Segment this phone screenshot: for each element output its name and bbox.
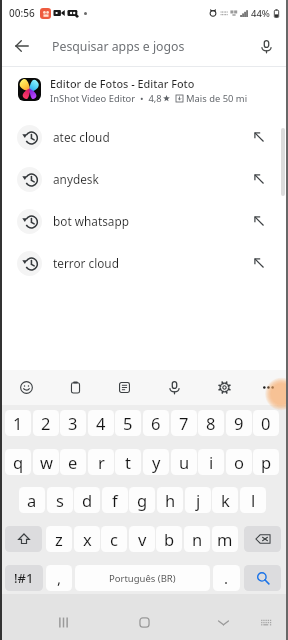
- button[interactable]: 1: [5, 410, 31, 436]
- button[interactable]: Stickers: [107, 370, 141, 405]
- staticText: k: [221, 489, 230, 511]
- staticText: y: [152, 451, 161, 473]
- staticText: f: [112, 489, 118, 511]
- button[interactable]: z: [46, 526, 72, 552]
- staticText: 00:56: [9, 6, 35, 20]
- button[interactable]: n: [184, 526, 210, 552]
- button[interactable]: p: [253, 449, 279, 475]
- button[interactable]: s: [47, 487, 73, 513]
- button[interactable]: Backspace: [244, 526, 281, 552]
- button[interactable]: 2: [33, 410, 59, 436]
- button[interactable]: Insert anydesk into search: [248, 168, 270, 190]
- staticText: z: [55, 528, 63, 550]
- button[interactable]: v: [129, 526, 155, 552]
- staticText: 44%: [251, 7, 270, 20]
- button[interactable]: Clipboard: [58, 370, 92, 405]
- button[interactable]: b: [156, 526, 182, 552]
- button[interactable]: atec cloud: [0, 116, 288, 158]
- button[interactable]: !#1: [5, 565, 43, 591]
- staticText: Português (BR): [109, 572, 176, 585]
- button[interactable]: ,: [46, 565, 72, 591]
- button[interactable]: terror cloud: [0, 242, 288, 284]
- button[interactable]: h: [157, 487, 183, 513]
- button[interactable]: 7: [171, 410, 197, 436]
- button[interactable]: More options: [251, 370, 285, 405]
- button[interactable]: 4: [88, 410, 114, 436]
- button[interactable]: y: [143, 449, 169, 475]
- staticText: p: [261, 451, 272, 473]
- button[interactable]: u: [171, 449, 197, 475]
- staticText: 4: [96, 412, 106, 434]
- button[interactable]: o: [226, 449, 252, 475]
- staticText: q: [13, 451, 24, 473]
- staticText: .: [224, 568, 229, 588]
- staticText: c: [110, 528, 118, 550]
- button[interactable]: 9: [226, 410, 252, 436]
- button[interactable]: Editor de Fotos - Editar Foto: [0, 67, 288, 116]
- button[interactable]: Back: [8, 32, 36, 60]
- button[interactable]: d: [74, 487, 100, 513]
- button[interactable]: f: [102, 487, 128, 513]
- button[interactable]: Home: [124, 605, 164, 639]
- button[interactable]: Insert atec cloud into search: [248, 126, 270, 148]
- button[interactable]: k: [212, 487, 238, 513]
- staticText: v: [138, 528, 147, 550]
- staticText: m: [217, 528, 233, 550]
- staticText: j: [196, 489, 201, 511]
- staticText: 8: [206, 412, 216, 434]
- staticText: 5: [123, 412, 133, 434]
- button[interactable]: Voice search: [252, 32, 280, 60]
- button[interactable]: Insert bot whatsapp into search: [248, 210, 270, 232]
- staticText: Mais de 50 mi: [186, 92, 248, 105]
- button[interactable]: x: [74, 526, 100, 552]
- button[interactable]: Recent apps: [43, 605, 83, 639]
- staticText: Editor de Fotos - Editar Foto: [50, 76, 195, 91]
- button[interactable]: Back: [203, 605, 243, 639]
- button[interactable]: w: [33, 449, 59, 475]
- button[interactable]: Shift: [5, 526, 42, 552]
- staticText: Pesquisar apps e jogos: [52, 38, 185, 55]
- button[interactable]: c: [101, 526, 127, 552]
- staticText: h: [165, 489, 176, 511]
- staticText: o: [234, 451, 244, 473]
- button[interactable]: i: [198, 449, 224, 475]
- button[interactable]: 3: [60, 410, 86, 436]
- button[interactable]: 8: [198, 410, 224, 436]
- button[interactable]: 6: [143, 410, 169, 436]
- button[interactable]: bot whatsapp: [0, 200, 288, 242]
- button[interactable]: Voice input: [157, 370, 191, 405]
- staticText: b: [164, 528, 175, 550]
- button[interactable]: a: [19, 487, 45, 513]
- button[interactable]: g: [129, 487, 155, 513]
- staticText: s: [56, 489, 64, 511]
- button[interactable]: m: [212, 526, 238, 552]
- staticText: n: [192, 528, 203, 550]
- staticText: 0: [261, 412, 271, 434]
- button[interactable]: e: [60, 449, 86, 475]
- staticText: i: [209, 451, 214, 473]
- staticText: 3: [68, 412, 78, 434]
- button[interactable]: .: [213, 565, 240, 591]
- staticText: atec cloud: [53, 129, 110, 145]
- button[interactable]: Search: [244, 565, 281, 591]
- button[interactable]: Insert terror cloud into search: [248, 252, 270, 274]
- button[interactable]: Português (BR): [75, 565, 210, 591]
- button[interactable]: r: [88, 449, 114, 475]
- button[interactable]: anydesk: [0, 158, 288, 200]
- button[interactable]: t: [115, 449, 141, 475]
- button[interactable]: 5: [115, 410, 141, 436]
- button[interactable]: Settings: [207, 370, 241, 405]
- staticText: anydesk: [53, 171, 99, 187]
- button[interactable]: 0: [253, 410, 279, 436]
- button[interactable]: j: [185, 487, 211, 513]
- staticText: t: [125, 451, 131, 473]
- button[interactable]: Emoji: [9, 370, 43, 405]
- staticText: 2: [41, 412, 51, 434]
- button[interactable]: Keyboard layout: [248, 605, 282, 639]
- button[interactable]: l: [240, 487, 266, 513]
- staticText: bot whatsapp: [53, 213, 129, 229]
- staticText: r: [98, 451, 105, 473]
- staticText: x: [83, 528, 92, 550]
- button[interactable]: q: [5, 449, 31, 475]
- staticText: !#1: [14, 569, 34, 587]
